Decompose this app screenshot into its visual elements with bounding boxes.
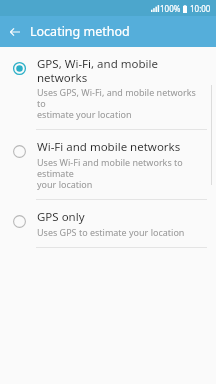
staticText: Locating method: [30, 23, 130, 40]
staticText: GPS only: [37, 209, 85, 225]
button[interactable]: Back: [5, 22, 25, 42]
button[interactable]: GPS, Wi-Fi, and mobile networks: [0, 47, 216, 129]
staticText: Wi-Fi and mobile networks: [37, 139, 181, 155]
staticText: 100%: [160, 3, 181, 14]
button[interactable]: GPS only: [0, 200, 216, 247]
staticText: Uses GPS to estimate your location: [37, 226, 185, 238]
staticText: 10:00: [190, 3, 211, 14]
staticText: Uses GPS, Wi-Fi, and mobile networks to …: [37, 86, 206, 120]
staticText: Uses Wi-Fi and mobile networks to estima…: [37, 156, 206, 190]
button[interactable]: Wi-Fi and mobile networks: [0, 130, 216, 199]
staticText: GPS, Wi-Fi, and mobile networks: [37, 56, 206, 85]
